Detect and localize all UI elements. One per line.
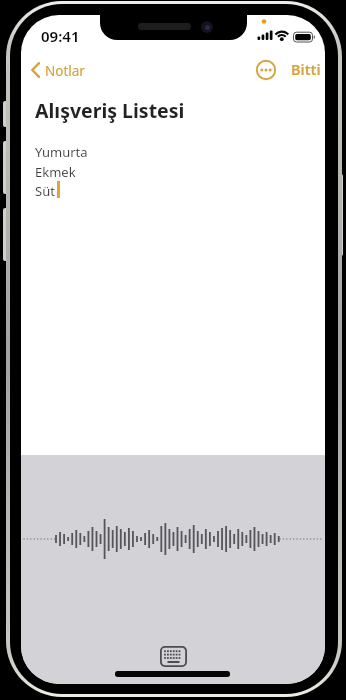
button[interactable]: Notlar: [25, 57, 103, 83]
staticText: Alışveriş Listesi: [35, 97, 185, 124]
staticText: Ekmek: [35, 163, 76, 181]
button[interactable]: Bitti: [287, 57, 325, 81]
button[interactable]: [255, 59, 277, 81]
staticText: Notlar: [45, 62, 85, 80]
staticText: Süt: [35, 182, 55, 200]
staticText: Bitti: [291, 59, 321, 79]
button[interactable]: [155, 641, 191, 671]
staticText: Yumurta: [35, 143, 88, 161]
staticText: 09:41: [41, 26, 80, 46]
